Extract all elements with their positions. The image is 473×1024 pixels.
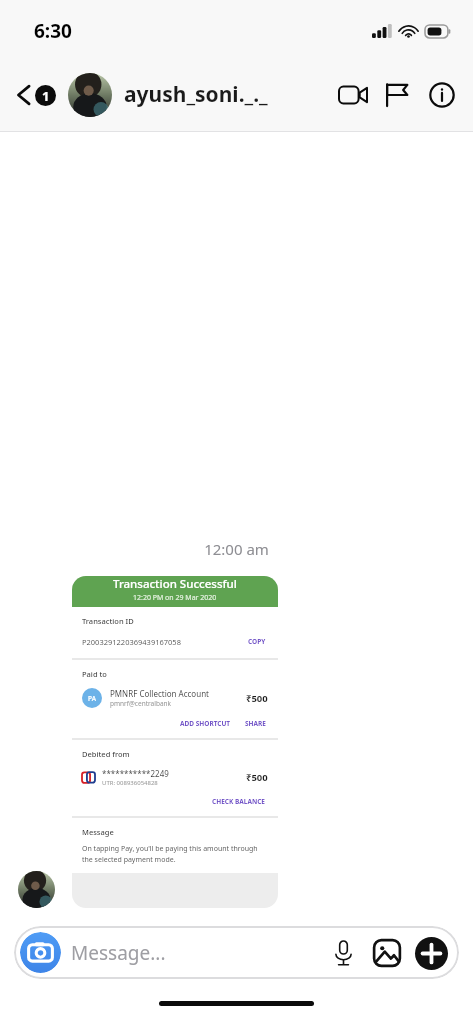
staticText: 1 [42, 87, 50, 105]
staticText: PMNRF Collection Account [110, 688, 209, 699]
staticText: Message... [71, 940, 323, 966]
staticText: ***********2249 [102, 768, 169, 779]
staticText: 6:30 [34, 18, 72, 44]
staticText: 12:00 am [0, 539, 473, 559]
staticText: Transaction Successful [113, 576, 237, 592]
button[interactable]: SHARE [243, 717, 268, 730]
button[interactable]: Transaction Successful [72, 576, 278, 908]
button[interactable]: Report [375, 73, 419, 117]
button[interactable]: ADD SHORTCUT [178, 717, 233, 730]
staticText: P2003291220369439167058 [82, 637, 246, 647]
staticText: pmnrf@centralbank [110, 699, 172, 708]
staticText: Message [82, 827, 114, 837]
button[interactable]: COPY [246, 635, 268, 648]
staticText: Transaction ID [82, 616, 134, 626]
staticText: ayush_soni._._ [124, 80, 331, 109]
staticText: ₹500 [246, 771, 268, 784]
button[interactable]: Info [419, 72, 465, 118]
staticText: UTR: 008936054828 [102, 779, 158, 787]
button[interactable]: Photo gallery [367, 933, 407, 973]
button[interactable]: Video call [331, 73, 375, 117]
button[interactable]: Back, 1 unread [0, 75, 62, 115]
staticText: Debited from [82, 749, 130, 759]
button[interactable]: Profile photo [68, 73, 112, 117]
staticText: 12:20 PM on 29 Mar 2020 [133, 593, 217, 603]
button[interactable]: Voice message [323, 933, 363, 973]
button[interactable]: Add [411, 933, 451, 973]
staticText: PA [88, 694, 96, 703]
button[interactable]: Camera [14, 926, 459, 979]
staticText: Paid to [82, 669, 107, 679]
staticText: On tapping Pay, you'll be paying this am… [82, 844, 268, 864]
button[interactable]: CHECK BALANCE [210, 795, 268, 808]
staticText: ₹500 [246, 692, 268, 705]
button[interactable]: Camera [20, 932, 61, 973]
